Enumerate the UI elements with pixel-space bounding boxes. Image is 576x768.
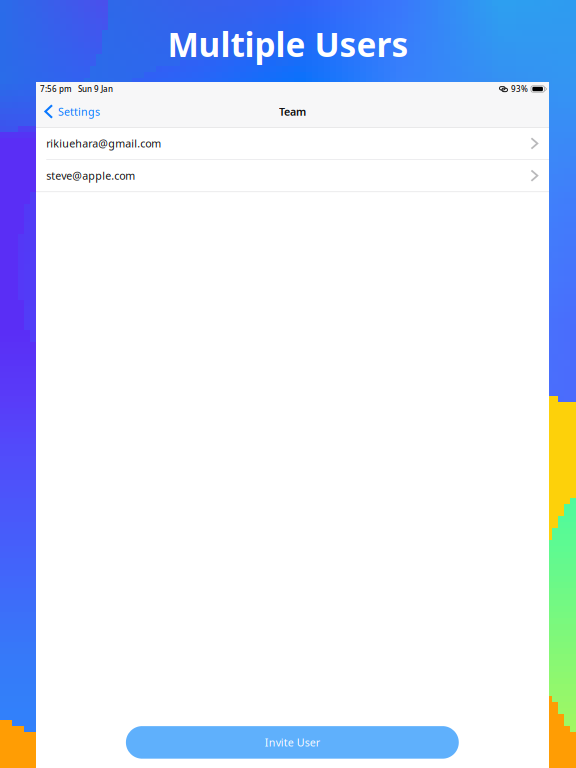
button[interactable]: Invite User [126,726,459,759]
button[interactable]: rikiuehara@gmail.com [36,128,549,159]
button[interactable]: steve@apple.com [36,160,549,191]
staticText: rikiuehara@gmail.com [46,136,161,151]
staticText: Invite User [265,735,320,749]
staticText: Sun 9 Jan [78,84,113,94]
staticText: steve@apple.com [46,169,135,183]
staticText: 7:56 pm [40,84,72,94]
button[interactable]: Settings [36,100,100,123]
staticText: 93% [511,84,528,94]
staticText: Multiple Users [167,22,408,66]
staticText: Settings [58,104,100,119]
staticText: Team [279,104,306,119]
